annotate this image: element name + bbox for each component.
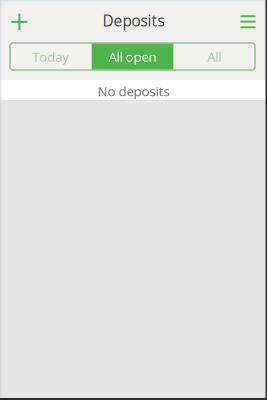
staticText: All open bbox=[108, 47, 156, 66]
button[interactable]: New deposit bbox=[0, 3, 39, 38]
button[interactable]: Today bbox=[10, 43, 92, 70]
staticText: All bbox=[207, 47, 221, 66]
staticText: No deposits bbox=[97, 82, 169, 100]
button[interactable]: All bbox=[173, 43, 255, 70]
staticText: Today bbox=[32, 47, 69, 66]
staticText: Deposits bbox=[102, 10, 164, 31]
button[interactable]: Menu bbox=[229, 3, 267, 38]
button[interactable]: All open bbox=[92, 43, 173, 70]
